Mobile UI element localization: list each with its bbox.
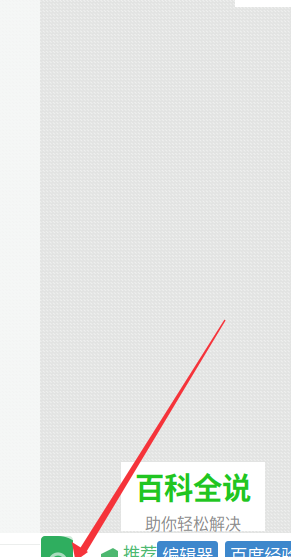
staticText: 助你轻松解决 — [145, 511, 241, 534]
staticText: 百科全说 — [135, 465, 251, 507]
button[interactable]: 编辑器 — [157, 541, 218, 557]
staticText: 推荐 — [123, 540, 157, 557]
staticText: 百度经验 — [230, 542, 291, 557]
button[interactable]: 百科全说 — [121, 462, 265, 531]
staticText: 编辑器 — [162, 542, 213, 557]
button[interactable]: 百度经验 — [41, 536, 73, 557]
button[interactable]: 百度经验 — [225, 541, 291, 557]
button[interactable]: 推荐 — [101, 540, 157, 557]
